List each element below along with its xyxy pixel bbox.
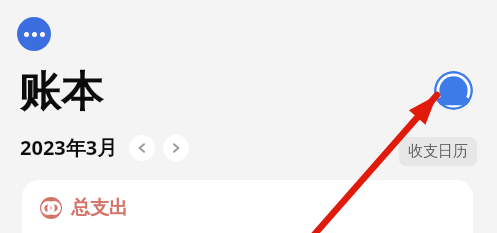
button[interactable]: 收支日历	[399, 137, 477, 166]
button[interactable]: Next month	[163, 135, 189, 161]
button[interactable]: Previous month	[129, 135, 155, 161]
button[interactable]: Profile	[434, 71, 473, 110]
button[interactable]: More options	[17, 17, 51, 51]
button[interactable]: 总支出	[22, 180, 473, 233]
staticText: 账本	[19, 66, 103, 119]
staticText: 总支出	[71, 196, 128, 220]
staticText: 收支日历	[408, 142, 468, 161]
staticText: 2023年3月	[20, 134, 118, 161]
